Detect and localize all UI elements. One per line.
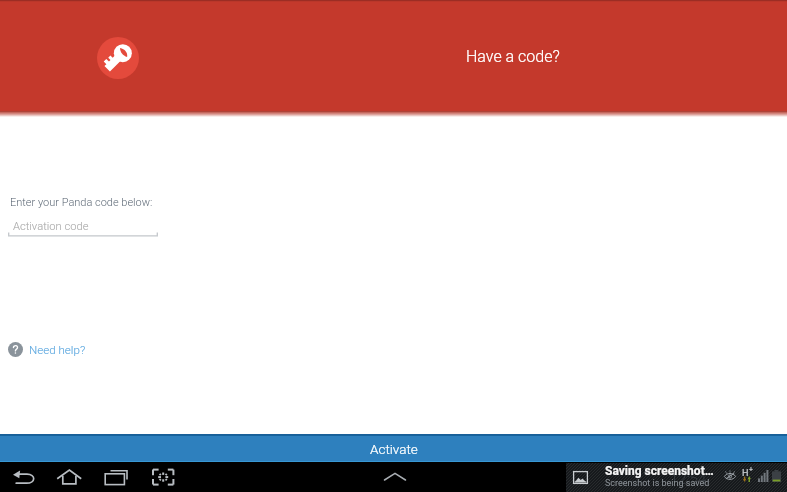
staticText: Screenshot is being saved: [605, 478, 710, 489]
staticText: Have a code?: [466, 47, 560, 66]
staticText: Enter your Panda code below:: [10, 196, 153, 209]
staticText: Activation code: [13, 220, 89, 233]
staticText: Saving screenshot…: [605, 464, 714, 478]
button[interactable]: 12:54: [566, 463, 787, 492]
staticText: Activate: [370, 441, 418, 457]
button[interactable]: Home: [54, 465, 92, 489]
button[interactable]: Need help?: [8, 342, 86, 357]
button[interactable]: Screenshot: [145, 465, 183, 489]
button[interactable]: Activate: [0, 434, 787, 463]
button[interactable]: Back: [4, 465, 42, 489]
staticText: H: [742, 468, 749, 479]
staticText: +: [749, 466, 753, 474]
button[interactable]: Recent apps: [99, 465, 137, 489]
staticText: Need help?: [29, 343, 86, 357]
button[interactable]: Expand status bar: [376, 465, 414, 489]
staticText: 12:54: [670, 470, 707, 488]
button[interactable]: Key: [97, 37, 139, 79]
